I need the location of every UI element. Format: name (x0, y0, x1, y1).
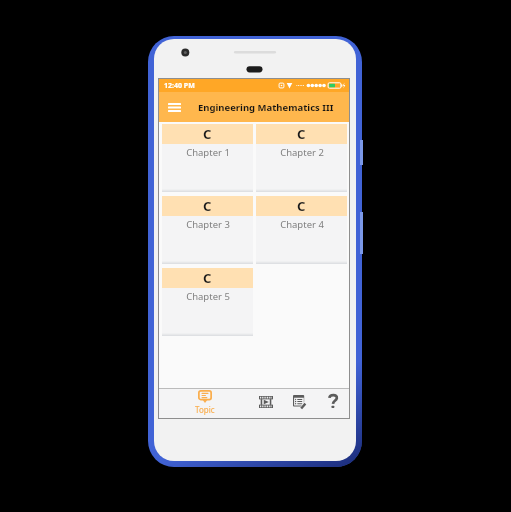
staticText: Chapter 2 (280, 146, 324, 159)
staticText: 12:40 PM (164, 81, 195, 91)
staticText: Chapter 1 (186, 146, 230, 159)
button[interactable]: Help (316, 389, 349, 418)
staticText: Chapter 4 (280, 218, 324, 231)
staticText: Topic (195, 404, 215, 415)
button[interactable]: Videos (250, 389, 283, 418)
staticText: C (203, 269, 212, 287)
button[interactable]: C (256, 196, 347, 264)
staticText: Engineering Mathematics III (198, 101, 334, 114)
button[interactable]: C (162, 268, 253, 336)
button[interactable]: C (162, 196, 253, 264)
button[interactable]: Notes (283, 389, 316, 418)
staticText: Chapter 3 (186, 218, 230, 231)
staticText: Chapter 5 (186, 290, 230, 303)
button[interactable]: Topic (159, 389, 250, 418)
staticText: C (203, 125, 212, 143)
staticText: C (297, 197, 306, 215)
button[interactable]: Open navigation menu (163, 96, 185, 118)
button[interactable]: C (162, 124, 253, 192)
button[interactable]: C (256, 124, 347, 192)
staticText: C (297, 125, 306, 143)
staticText: C (203, 197, 212, 215)
